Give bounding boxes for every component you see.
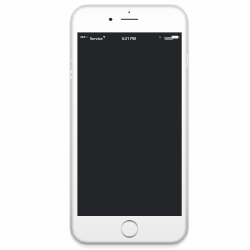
button[interactable]: Home button bbox=[121, 220, 139, 238]
staticText: Service bbox=[90, 36, 103, 41]
staticText: 6:21 PM bbox=[122, 36, 136, 41]
button[interactable]: Phone display bbox=[77, 43, 181, 216]
staticText: 100% bbox=[164, 36, 173, 41]
